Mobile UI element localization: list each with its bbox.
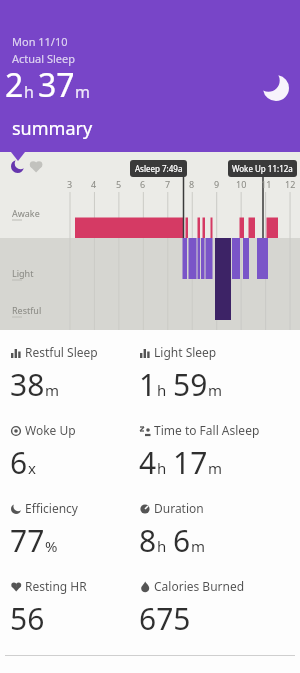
staticText: Restful: [12, 304, 42, 316]
staticText: 2: [5, 63, 24, 107]
staticText: 4: [91, 178, 97, 190]
staticText: Light Sleep: [154, 344, 217, 360]
staticText: Awake: [12, 207, 40, 219]
staticText: m: [191, 536, 206, 556]
staticText: 77: [10, 520, 45, 561]
button[interactable]: Duration: [139, 500, 206, 561]
staticText: x: [28, 458, 36, 478]
staticText: Woke Up 11:12a: [232, 163, 293, 174]
staticText: 37: [38, 63, 75, 107]
staticText: Restful Sleep: [25, 344, 98, 360]
staticText: 9: [214, 178, 220, 190]
button[interactable]: Efficiency: [10, 500, 78, 561]
staticText: Asleep 7:49a: [135, 163, 183, 174]
staticText: 8: [139, 520, 157, 561]
staticText: 3: [67, 178, 73, 190]
staticText: 4: [139, 442, 157, 483]
staticText: Duration: [154, 500, 204, 516]
button[interactable]: Resting HR: [10, 578, 87, 639]
staticText: 1: [139, 364, 157, 405]
staticText: m: [208, 380, 223, 400]
staticText: Time to Fall Asleep: [154, 422, 260, 438]
staticText: h: [157, 458, 167, 478]
staticText: h: [157, 380, 167, 400]
staticText: m: [45, 380, 60, 400]
button[interactable]: Time to Fall Asleep: [139, 422, 260, 483]
staticText: Efficiency: [25, 500, 78, 516]
staticText: 7: [165, 178, 171, 190]
staticText: h: [24, 81, 34, 103]
staticText: 59: [173, 364, 208, 405]
staticText: %: [45, 536, 58, 556]
staticText: 6: [10, 442, 28, 483]
staticText: Woke Up: [25, 422, 76, 438]
staticText: 12: [285, 178, 296, 190]
staticText: 11: [261, 178, 272, 190]
staticText: 675: [139, 598, 191, 639]
staticText: Calories Burned: [154, 578, 245, 594]
button[interactable]: Light Sleep: [139, 344, 223, 405]
button[interactable]: [0, 0, 300, 152]
staticText: 5: [116, 178, 122, 190]
staticText: m: [208, 458, 223, 478]
button[interactable]: Woke Up: [10, 422, 76, 483]
staticText: 17: [173, 442, 208, 483]
staticText: Resting HR: [25, 578, 87, 594]
staticText: 6: [173, 520, 191, 561]
staticText: h: [157, 536, 167, 556]
staticText: 10: [236, 178, 247, 190]
staticText: m: [75, 81, 90, 103]
button[interactable]: Calories Burned: [139, 578, 245, 639]
staticText: summary: [12, 116, 93, 141]
staticText: 8: [189, 178, 195, 190]
staticText: 56: [10, 598, 45, 639]
staticText: 6: [140, 178, 146, 190]
staticText: 38: [10, 364, 45, 405]
button[interactable]: Restful Sleep: [10, 344, 98, 405]
staticText: Mon 11/10: [12, 34, 68, 49]
staticText: Light: [12, 267, 34, 279]
staticText: Actual Sleep: [12, 51, 75, 66]
